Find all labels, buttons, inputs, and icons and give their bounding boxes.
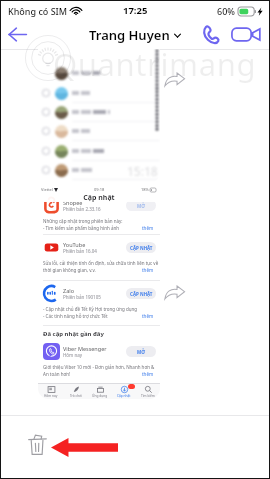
button[interactable]	[42, 197, 160, 215]
staticText: CẬP NHẬT	[130, 291, 153, 297]
button[interactable]: Trò chơi	[63, 384, 88, 399]
button[interactable]: Photo message	[38, 185, 160, 399]
button[interactable]: Video call	[230, 20, 263, 49]
staticText: Hôm nay	[63, 352, 83, 358]
staticText: 60%	[217, 5, 235, 17]
staticText: Zalo	[63, 287, 74, 294]
staticText: Hôm nay	[44, 394, 58, 398]
staticText: - Tìm kiếm sản phẩm bằng hình ảnh	[43, 225, 119, 231]
staticText: Phiên bản 2.33.16	[63, 206, 101, 212]
button[interactable]: thêm	[142, 267, 154, 273]
staticText: Trò chơi	[70, 394, 82, 398]
staticText: thời gian không gian, v.v.	[43, 267, 96, 273]
staticText: Phiên bản 16.04	[63, 248, 97, 254]
staticText: Quantrimang	[53, 43, 257, 85]
staticText: Viettel	[41, 187, 53, 192]
staticText: Phiên bản 190105	[63, 294, 101, 300]
staticText: - Các tính năng hỗ trợ chức Tết	[43, 313, 108, 319]
staticText: Đã cập nhật gần đây	[43, 330, 104, 338]
staticText: 17:25	[123, 4, 148, 17]
button[interactable]: Forward	[164, 284, 185, 301]
button[interactable]: Forward	[164, 71, 185, 88]
button[interactable]: Hôm nay	[38, 384, 63, 399]
staticText: YouTube	[63, 241, 86, 248]
staticText: 18%	[141, 187, 149, 192]
button[interactable]	[42, 343, 160, 361]
button[interactable]: Ứng dụng	[88, 384, 112, 399]
staticText: MỞ	[137, 203, 145, 209]
staticText: Ứng dụng	[92, 394, 108, 398]
button[interactable]: Photo message	[38, 49, 160, 183]
staticText: 09:18	[94, 187, 105, 192]
button[interactable]: Trang Huyen	[89, 26, 181, 44]
staticText: Giới thiệu Viber 10 mới - Đơn giản hơn, …	[43, 364, 155, 370]
button[interactable]: Delete	[27, 432, 48, 459]
button[interactable]	[42, 285, 160, 303]
staticText: Tìm kiếm	[141, 394, 155, 398]
staticText: Không có SIM	[8, 5, 68, 17]
button[interactable]: thêm	[142, 313, 154, 319]
button[interactable]: Tìm kiếm	[136, 384, 160, 399]
staticText: Sửa lỗi, cải thiện tính ổn định, sửa chữ…	[43, 260, 159, 266]
button[interactable]: CẬP NHẬT	[126, 242, 156, 253]
staticText: Cập nhật	[117, 394, 131, 398]
button[interactable]: CẬP NHẬT	[126, 288, 156, 299]
button[interactable]: Call	[198, 20, 222, 49]
button[interactable]: thêm	[142, 371, 154, 377]
button[interactable]: thêm	[142, 225, 154, 231]
button[interactable]: MỞ	[126, 200, 156, 211]
staticText: MỞ	[137, 349, 145, 355]
staticText: Shopee	[63, 199, 83, 206]
staticText: CẬP NHẬT	[130, 245, 153, 251]
staticText: An toàn hơn!	[43, 371, 71, 377]
button[interactable]: MỞ	[126, 346, 156, 357]
button[interactable]	[42, 239, 160, 257]
staticText: 15:18	[127, 163, 158, 179]
staticText: Viber Messenger	[63, 345, 107, 352]
staticText: - Cập nhật chủ đề Tết Kỷ Hợi trong ứng d…	[43, 306, 138, 312]
staticText: Cập nhật	[38, 193, 160, 203]
button[interactable]: Cập nhật	[112, 384, 136, 399]
staticText: Trang Huyen	[89, 26, 170, 44]
staticText: Những cập nhật trong phiên bản này:	[43, 218, 123, 224]
button[interactable]: Back	[5, 20, 29, 49]
